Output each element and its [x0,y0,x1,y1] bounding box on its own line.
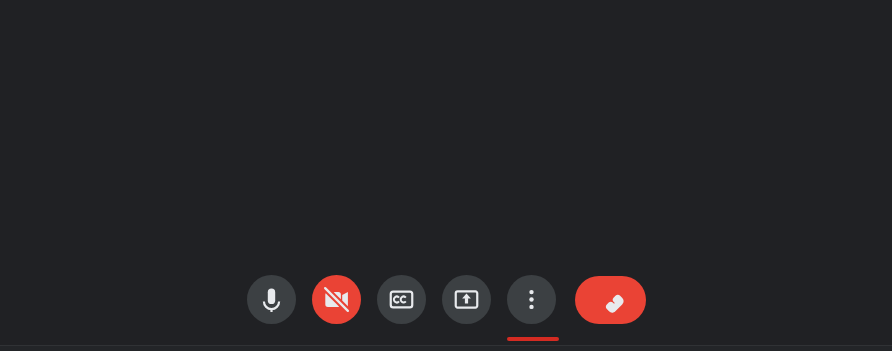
button[interactable]: Mute microphone [247,275,296,324]
button[interactable]: More options [507,275,556,324]
button[interactable]: Closed captions [377,275,426,324]
button[interactable]: Present screen [442,275,491,324]
button[interactable]: Leave call [575,276,646,324]
button[interactable]: Turn on camera [312,275,361,324]
